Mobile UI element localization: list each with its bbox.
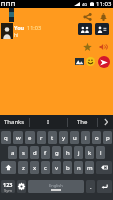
button[interactable]: s: [19, 146, 28, 159]
staticText: v: [55, 164, 59, 172]
staticText: j: [78, 149, 80, 157]
button[interactable]: w: [13, 131, 23, 144]
button[interactable]: I: [30, 115, 67, 129]
button[interactable]: o: [92, 131, 101, 144]
button[interactable]: Add contact: [95, 23, 109, 35]
button[interactable]: Group members: [78, 23, 92, 35]
button[interactable]: k: [85, 146, 94, 159]
staticText: You: [14, 24, 25, 31]
button[interactable]: n: [74, 161, 83, 174]
staticText: m: [87, 164, 93, 172]
button[interactable]: Thanks: [0, 115, 29, 129]
button[interactable]: .: [86, 180, 95, 193]
staticText: g: [55, 149, 59, 157]
button[interactable]: More suggestions: [98, 115, 113, 129]
staticText: q: [4, 134, 8, 142]
button[interactable]: j: [74, 146, 83, 159]
staticText: a: [11, 149, 15, 157]
staticText: b: [66, 164, 70, 172]
staticText: p: [106, 134, 110, 142]
button[interactable]: g: [52, 146, 61, 159]
staticText: e: [28, 134, 32, 142]
staticText: l: [100, 149, 102, 157]
staticText: u: [73, 134, 77, 142]
staticText: r: [40, 134, 43, 142]
staticText: .: [90, 183, 92, 191]
staticText: The: [77, 118, 88, 126]
button[interactable]: z: [18, 161, 28, 174]
staticText: hi: [14, 32, 19, 39]
button[interactable]: Backspace: [96, 161, 112, 174]
button[interactable]: Sound: [98, 42, 108, 52]
button[interactable]: b: [63, 161, 72, 174]
button[interactable]: Share: [82, 12, 92, 22]
staticText: English: [49, 183, 63, 188]
button[interactable]: p: [103, 131, 112, 144]
button[interactable]: a: [8, 146, 17, 159]
staticText: s: [22, 149, 25, 157]
button[interactable]: l: [96, 146, 105, 159]
staticText: 11:03: [27, 24, 42, 31]
staticText: I: [47, 118, 50, 126]
staticText: d: [33, 149, 37, 157]
button[interactable]: Send: [98, 56, 110, 68]
staticText: f: [44, 149, 47, 157]
button[interactable]: 123: [1, 180, 15, 193]
button[interactable]: u: [70, 131, 79, 144]
staticText: 4G: [82, 2, 88, 7]
button[interactable]: t: [48, 131, 57, 144]
staticText: 11:03: [96, 0, 112, 8]
button[interactable]: Attach picture: [74, 57, 84, 66]
staticText: 123: [3, 181, 13, 188]
button[interactable]: Space: [28, 180, 84, 193]
button[interactable]: y: [59, 131, 68, 144]
button[interactable]: x: [30, 161, 39, 174]
button[interactable]: i: [81, 131, 90, 144]
button[interactable]: v: [52, 161, 61, 174]
button[interactable]: Emoji: [86, 57, 95, 66]
button[interactable]: r: [37, 131, 46, 144]
button[interactable]: The: [68, 115, 97, 129]
button[interactable]: h: [63, 146, 72, 159]
button[interactable]: Enter: [97, 180, 112, 193]
button[interactable]: f: [41, 146, 50, 159]
button[interactable]: c: [41, 161, 50, 174]
staticText: y: [62, 134, 66, 142]
staticText: x: [33, 164, 37, 172]
button[interactable]: m: [85, 161, 94, 174]
button[interactable]: Notifications: [98, 12, 108, 22]
staticText: w: [16, 134, 21, 142]
staticText: c: [44, 164, 47, 172]
staticText: o: [95, 134, 99, 142]
staticText: Thanks: [4, 118, 25, 126]
button[interactable]: d: [30, 146, 39, 159]
staticText: z: [22, 164, 25, 172]
staticText: i: [85, 134, 87, 142]
staticText: t: [51, 134, 54, 142]
staticText: k: [88, 149, 92, 157]
button[interactable]: e: [25, 131, 35, 144]
staticText: h: [66, 149, 70, 157]
button[interactable]: Shift: [1, 161, 16, 174]
staticText: Sym: [4, 188, 12, 193]
staticText: n: [77, 164, 81, 172]
button[interactable]: q: [1, 131, 11, 144]
button[interactable]: Favourite: [82, 42, 92, 52]
button[interactable]: Keyboard settings: [17, 180, 26, 193]
